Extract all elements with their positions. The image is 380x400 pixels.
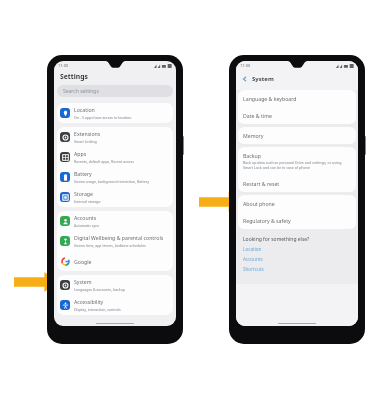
- button[interactable]: Digital Wellbeing & parental controls: [57, 231, 173, 251]
- staticText: System: [74, 278, 92, 285]
- staticText: Backup: [243, 152, 261, 159]
- staticText: Date & time: [243, 112, 272, 119]
- button[interactable]: Location: [243, 246, 262, 252]
- button[interactable]: Battery: [57, 167, 173, 187]
- staticText: 11:00: [58, 63, 69, 68]
- button[interactable]: Extensions: [57, 127, 173, 147]
- staticText: Looking for something else?: [243, 236, 310, 243]
- staticText: Accounts: [74, 214, 97, 221]
- button[interactable]: About phone: [238, 195, 356, 212]
- button[interactable]: Accounts: [57, 211, 173, 231]
- staticText: Screen usage, background restriction, Ba…: [74, 179, 150, 184]
- staticText: Storage: [74, 190, 93, 197]
- button[interactable]: Shortcuts: [243, 266, 264, 272]
- staticText: Screen time, app timers, bedtime schedul…: [74, 243, 146, 248]
- button[interactable]: Back: [240, 74, 249, 83]
- staticText: Search settings: [63, 88, 99, 95]
- button[interactable]: Accounts: [243, 256, 263, 262]
- staticText: Memory: [243, 132, 264, 139]
- staticText: Internal storage: [74, 199, 101, 204]
- staticText: Restart & reset: [243, 180, 280, 187]
- staticText: On - 3 apps have access to location: [74, 115, 132, 120]
- staticText: Display, interaction, controls: [74, 307, 121, 312]
- button[interactable]: Regulatory & safety: [238, 212, 356, 229]
- button[interactable]: System: [57, 275, 173, 295]
- staticText: Google: [74, 258, 92, 265]
- staticText: Extensions: [74, 130, 101, 137]
- staticText: Smart Linking: [74, 139, 97, 144]
- staticText: Automatic sync: [74, 223, 100, 228]
- button[interactable]: Location: [57, 103, 173, 123]
- button[interactable]: Language & keyboard: [238, 90, 356, 107]
- staticText: Apps: [74, 150, 87, 157]
- staticText: Languages & accounts, backup: [74, 287, 125, 292]
- staticText: System: [252, 75, 274, 83]
- button[interactable]: Date & time: [238, 107, 356, 124]
- staticText: Back up data such as personal Drive and …: [243, 160, 351, 170]
- staticText: 11:00: [240, 63, 251, 68]
- staticText: Location: [74, 106, 95, 113]
- staticText: Regulatory & safety: [243, 217, 291, 224]
- staticText: Digital Wellbeing & parental controls: [74, 234, 164, 241]
- button[interactable]: Google: [57, 251, 173, 271]
- staticText: Accessibility: [74, 298, 104, 305]
- button[interactable]: Backup: [238, 147, 356, 175]
- staticText: Language & keyboard: [243, 95, 297, 102]
- button[interactable]: Storage: [57, 187, 173, 207]
- staticText: Recents, default apps, Recent access: [74, 159, 134, 164]
- button[interactable]: Search settings: [57, 85, 173, 97]
- staticText: Battery: [74, 170, 92, 177]
- button[interactable]: Restart & reset: [238, 175, 356, 192]
- button[interactable]: Apps: [57, 147, 173, 167]
- staticText: About phone: [243, 200, 275, 207]
- button[interactable]: Accessibility: [57, 295, 173, 315]
- button[interactable]: Memory: [238, 127, 356, 144]
- staticText: Settings: [60, 72, 88, 81]
